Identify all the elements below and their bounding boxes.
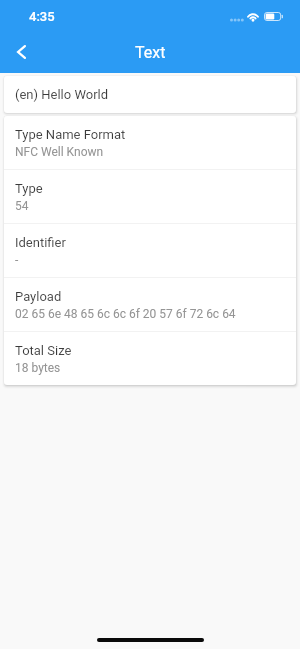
staticText: Identifier xyxy=(15,235,66,250)
staticText: Payload xyxy=(15,289,62,304)
staticText: Total Size xyxy=(15,343,72,358)
button[interactable]: Payload xyxy=(4,278,296,331)
staticText: Type Name Format xyxy=(15,127,126,142)
staticText: (en) Hello World xyxy=(15,87,109,102)
button[interactable]: Total Size xyxy=(4,332,296,385)
button[interactable]: (en) Hello World xyxy=(4,76,296,113)
staticText: - xyxy=(15,253,19,267)
staticText: 4:35 xyxy=(29,9,55,24)
button[interactable]: Type Name Format xyxy=(4,116,296,169)
staticText: 02 65 6e 48 65 6c 6c 6f 20 57 6f 72 6c 6… xyxy=(15,307,236,321)
button[interactable]: Back xyxy=(5,36,37,68)
button[interactable]: Type xyxy=(4,170,296,223)
button[interactable]: Identifier xyxy=(4,224,296,277)
staticText: Text xyxy=(135,43,166,62)
staticText: Type xyxy=(15,181,43,196)
staticText: NFC Well Known xyxy=(15,145,104,159)
staticText: 18 bytes xyxy=(15,361,61,375)
staticText: 54 xyxy=(15,199,29,213)
